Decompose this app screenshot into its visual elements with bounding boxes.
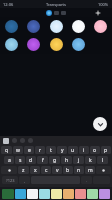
- button[interactable]: Colour 3: [27, 189, 38, 199]
- staticText: x: [34, 167, 37, 174]
- button[interactable]: w: [13, 146, 23, 154]
- staticText: s: [19, 157, 22, 164]
- button[interactable]: z: [18, 166, 29, 174]
- button[interactable]: b: [63, 166, 73, 174]
- staticText: l: [102, 157, 104, 164]
- button[interactable]: p: [101, 146, 111, 154]
- staticText: Transparts: [46, 2, 66, 7]
- button[interactable]: Symbols: [2, 176, 18, 184]
- staticText: 12:06: [3, 2, 14, 7]
- button[interactable]: j: [73, 156, 84, 164]
- button[interactable]: m: [85, 166, 95, 174]
- button[interactable]: Clipboard: [3, 138, 9, 144]
- button[interactable]: u: [68, 146, 78, 154]
- staticText: c: [45, 167, 48, 174]
- staticText: m: [88, 167, 93, 174]
- staticText: j: [78, 157, 80, 164]
- button[interactable]: g: [49, 156, 60, 164]
- staticText: w: [16, 147, 20, 154]
- staticText: v: [56, 167, 59, 174]
- staticText: ?123: [6, 178, 15, 183]
- button[interactable]: Suggestion 2: [20, 138, 25, 143]
- button[interactable]: Effect 2: [25, 36, 42, 53]
- button[interactable]: h: [61, 156, 72, 164]
- other: Sparkle: [96, 11, 100, 15]
- button[interactable]: Colour 7: [75, 189, 86, 199]
- staticText: z: [22, 167, 25, 174]
- button[interactable]: k: [85, 156, 96, 164]
- button[interactable]: e: [24, 146, 34, 154]
- staticText: n: [77, 167, 81, 174]
- button[interactable]: Colour 6: [63, 189, 74, 199]
- staticText: f: [42, 157, 44, 164]
- button[interactable]: Colour 1: [2, 189, 14, 199]
- button[interactable]: l: [97, 156, 108, 164]
- staticText: q: [5, 147, 9, 154]
- staticText: a: [8, 157, 11, 164]
- button[interactable]: Shift: [1, 166, 17, 174]
- staticText: e: [28, 147, 31, 154]
- button[interactable]: Comma: [19, 176, 30, 184]
- button[interactable]: a: [4, 156, 14, 164]
- button[interactable]: q: [1, 146, 12, 154]
- button[interactable]: Colour 4: [39, 189, 50, 199]
- button[interactable]: Colour 9: [99, 189, 110, 199]
- button[interactable]: o: [90, 146, 100, 154]
- staticText: t: [50, 147, 52, 154]
- button[interactable]: Effect 2: [25, 18, 42, 35]
- button[interactable]: Effect 1: [3, 36, 20, 53]
- staticText: 100%: [98, 2, 109, 7]
- button[interactable]: d: [26, 156, 36, 164]
- button[interactable]: i: [79, 146, 89, 154]
- button[interactable]: s: [15, 156, 25, 164]
- staticText: y: [61, 147, 64, 154]
- button[interactable]: x: [30, 166, 40, 174]
- button[interactable]: Suggestion 1: [12, 138, 17, 143]
- button[interactable]: n: [74, 166, 84, 174]
- button[interactable]: c: [41, 166, 51, 174]
- button[interactable]: Brush: [44, 10, 68, 16]
- button[interactable]: v: [52, 166, 62, 174]
- other: Brush: [46, 10, 52, 16]
- button[interactable]: Effect 3: [48, 18, 65, 35]
- button[interactable]: t: [46, 146, 56, 154]
- staticText: p: [104, 147, 108, 154]
- button[interactable]: Effect 3: [48, 36, 65, 53]
- button[interactable]: f: [37, 156, 48, 164]
- staticText: h: [65, 157, 69, 164]
- button[interactable]: y: [57, 146, 67, 154]
- staticText: r: [39, 147, 42, 154]
- button[interactable]: r: [35, 146, 45, 154]
- button[interactable]: Colour 8: [87, 189, 98, 199]
- staticText: g: [53, 157, 57, 164]
- button[interactable]: Effect 4: [70, 18, 87, 35]
- button[interactable]: Suggestion 3: [28, 138, 33, 143]
- staticText: o: [93, 147, 97, 154]
- button[interactable]: Effect 5: [92, 18, 109, 35]
- button[interactable]: Effect 4: [70, 36, 87, 53]
- staticText: k: [89, 157, 92, 164]
- button[interactable]: Effect 1: [3, 18, 20, 35]
- staticText: ,: [24, 178, 26, 183]
- staticText: i: [83, 147, 85, 154]
- staticText: u: [71, 147, 75, 154]
- button[interactable]: Colour 2: [15, 189, 26, 199]
- staticText: d: [29, 157, 33, 164]
- staticText: b: [66, 167, 70, 174]
- button[interactable]: Backspace: [96, 166, 111, 174]
- button[interactable]: Colour 5: [51, 189, 62, 199]
- staticText: .: [86, 178, 88, 183]
- button[interactable]: Collapse: [93, 117, 107, 131]
